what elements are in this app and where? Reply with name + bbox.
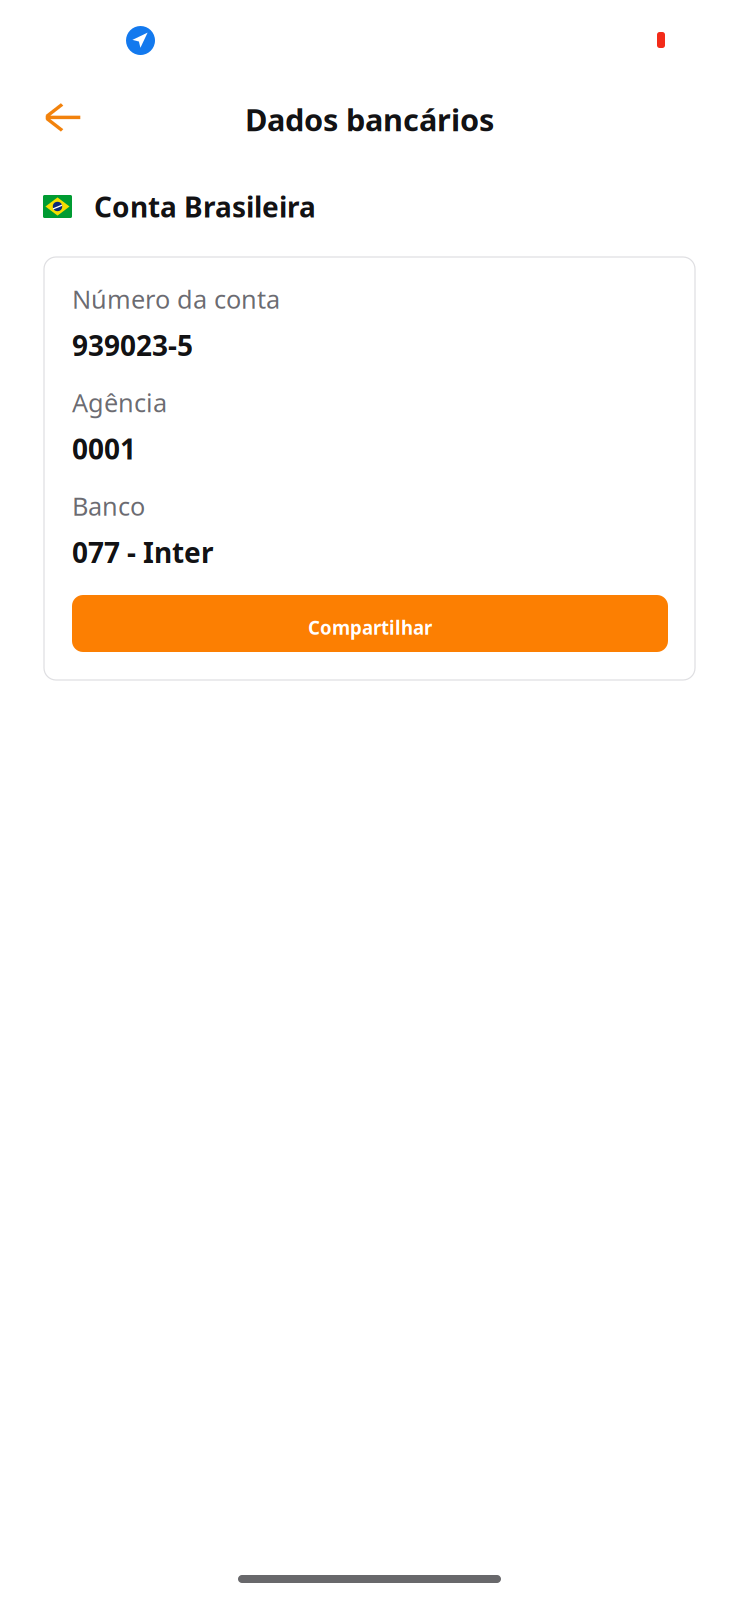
button[interactable]: Compartilhar <box>72 595 668 652</box>
staticText: Número da conta <box>72 282 280 316</box>
staticText: Compartilhar <box>308 615 432 640</box>
staticText: Conta Brasileira <box>94 188 316 225</box>
staticText: Agência <box>72 385 167 419</box>
staticText: 077 - Inter <box>72 533 214 571</box>
staticText: 0001 <box>72 430 136 467</box>
staticText: Dados bancários <box>245 99 494 140</box>
staticText: Banco <box>72 489 145 523</box>
button[interactable]: Back <box>31 89 94 146</box>
staticText: 939023-5 <box>72 326 193 364</box>
